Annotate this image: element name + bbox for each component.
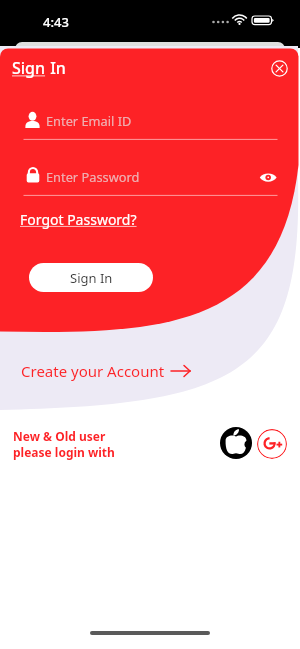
button[interactable]: Sign in with Apple bbox=[220, 427, 252, 459]
staticText: Enter Email ID bbox=[46, 112, 132, 129]
button[interactable]: Enter Email ID bbox=[23, 110, 278, 140]
button[interactable]: Show password bbox=[258, 168, 278, 188]
button[interactable]: Create your Account bbox=[21, 361, 191, 381]
button[interactable]: Forgot Password? bbox=[20, 210, 137, 229]
staticText: please login with bbox=[13, 444, 115, 460]
staticText: Sign bbox=[12, 57, 46, 79]
button[interactable]: Sign In bbox=[29, 263, 153, 292]
button[interactable]: Close bbox=[271, 60, 288, 77]
staticText: Enter Password bbox=[46, 168, 140, 185]
staticText: Sign In bbox=[70, 269, 113, 287]
button[interactable]: Sign in with Google Plus bbox=[257, 429, 287, 459]
button[interactable]: Sign bbox=[12, 57, 66, 79]
button[interactable]: Enter Password bbox=[23, 166, 278, 196]
staticText: Create your Account bbox=[21, 361, 165, 381]
staticText: In bbox=[46, 57, 66, 79]
staticText: 4:43 bbox=[43, 13, 69, 31]
staticText: New & Old user bbox=[13, 428, 106, 444]
staticText: Forgot Password? bbox=[20, 210, 137, 229]
